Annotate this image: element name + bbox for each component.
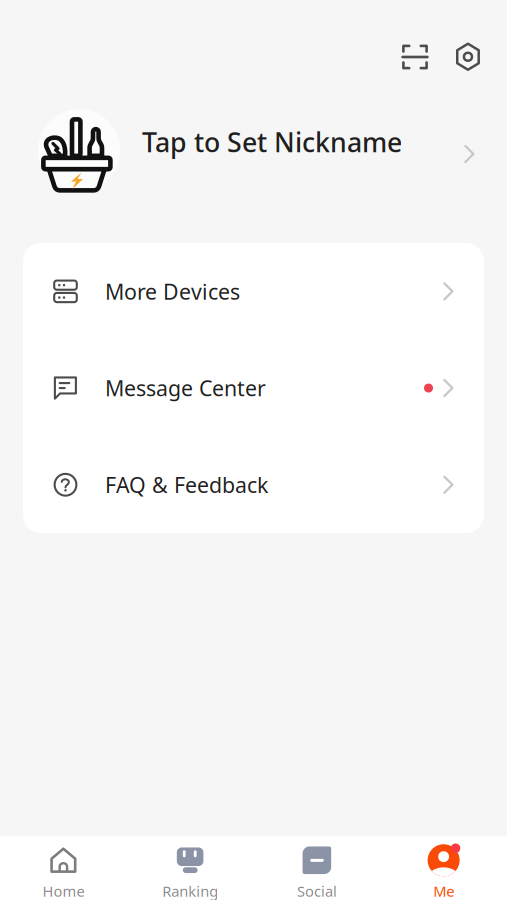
button[interactable]: More Devices <box>23 243 484 340</box>
button[interactable]: Message Center <box>23 340 484 436</box>
staticText: Social <box>297 881 337 900</box>
staticText: Tap to Set Nickname <box>142 124 402 160</box>
button[interactable]: Scan <box>393 35 437 79</box>
button[interactable]: Me <box>380 832 507 900</box>
staticText: FAQ & Feedback <box>105 471 268 499</box>
staticText: Ranking <box>162 881 218 900</box>
button[interactable]: Home <box>0 832 127 900</box>
staticText: Home <box>42 881 84 900</box>
button[interactable]: FAQ & Feedback <box>23 436 484 533</box>
staticText: Me <box>433 881 454 900</box>
button[interactable]: Ranking <box>127 832 254 900</box>
button[interactable]: Settings <box>446 35 490 79</box>
button[interactable]: Tap to Set Nickname <box>0 104 507 188</box>
button[interactable]: Social <box>253 832 380 900</box>
staticText: Message Center <box>105 374 266 402</box>
staticText: More Devices <box>105 277 240 305</box>
